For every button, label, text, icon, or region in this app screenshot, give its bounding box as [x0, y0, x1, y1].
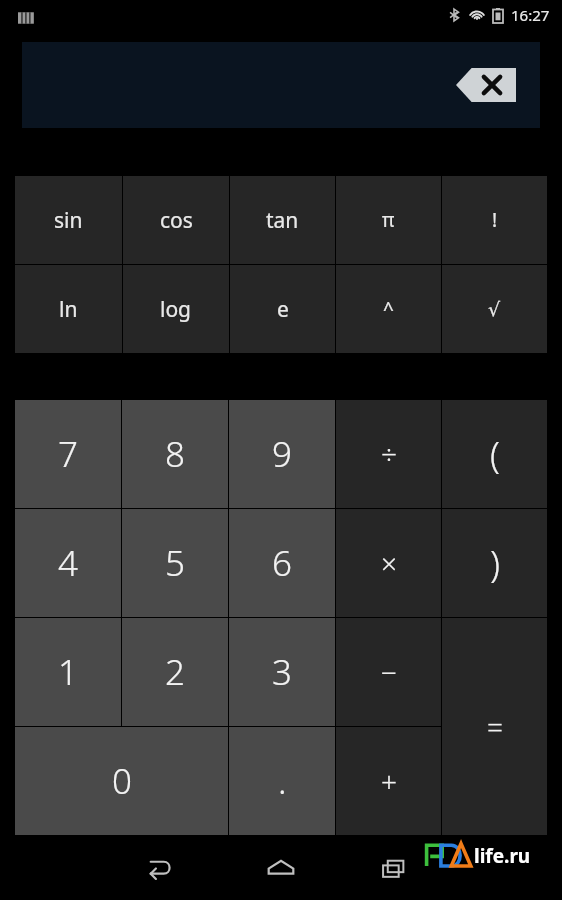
button[interactable]: ( [442, 400, 547, 508]
button[interactable]: π [336, 176, 441, 264]
button[interactable]: 8 [122, 400, 228, 508]
button[interactable]: Backspace [22, 42, 540, 128]
button[interactable]: = [442, 618, 547, 835]
button[interactable]: 9 [229, 400, 335, 508]
staticText: . [278, 757, 287, 805]
staticText: π [382, 207, 395, 233]
button[interactable]: 6 [229, 509, 335, 617]
button[interactable]: − [336, 618, 441, 726]
staticText: √ [488, 298, 501, 320]
button[interactable]: 5 [122, 509, 228, 617]
button[interactable]: ^ [336, 265, 441, 353]
staticText: 16:27 [511, 5, 550, 25]
staticText: + [381, 762, 397, 800]
staticText: 3 [272, 648, 292, 696]
staticText: cos [160, 206, 193, 235]
staticText: 0 [112, 757, 132, 805]
staticText: life.ru [474, 843, 531, 869]
button[interactable]: 2 [122, 618, 228, 726]
staticText: − [381, 653, 397, 691]
staticText: log [160, 295, 192, 324]
button[interactable]: . [229, 727, 335, 835]
staticText: sin [54, 206, 83, 235]
staticText: e [277, 295, 289, 324]
button[interactable]: e [230, 265, 335, 353]
staticText: 1 [58, 648, 78, 696]
button[interactable]: 4 [15, 509, 121, 617]
button[interactable]: sin [15, 176, 122, 264]
button[interactable]: tan [230, 176, 335, 264]
staticText: = [487, 708, 503, 746]
staticText: × [381, 544, 397, 582]
staticText: 9 [272, 430, 292, 478]
button[interactable]: 7 [15, 400, 121, 508]
button[interactable]: 1 [15, 618, 121, 726]
button[interactable]: Home [253, 840, 309, 896]
button[interactable]: Back [130, 840, 186, 896]
button[interactable]: Recent apps [366, 840, 422, 896]
staticText: ( [490, 430, 500, 479]
staticText: 7 [58, 430, 78, 478]
staticText: 6 [272, 539, 292, 587]
button[interactable]: + [336, 727, 441, 835]
staticText: 2 [165, 648, 185, 696]
staticText: ! [492, 207, 498, 233]
button[interactable]: 3 [229, 618, 335, 726]
staticText: 5 [165, 539, 185, 587]
button[interactable]: log [123, 265, 229, 353]
button[interactable]: cos [123, 176, 229, 264]
button[interactable]: ÷ [336, 400, 441, 508]
staticText: 4 [58, 539, 78, 587]
button[interactable]: ! [442, 176, 547, 264]
button[interactable]: ) [442, 509, 547, 617]
button[interactable]: ln [15, 265, 122, 353]
staticText: ln [59, 295, 78, 324]
button[interactable]: Backspace [456, 68, 516, 102]
button[interactable]: 0 [15, 727, 228, 835]
staticText: ^ [383, 296, 394, 322]
button[interactable]: × [336, 509, 441, 617]
button[interactable]: √ [442, 265, 547, 353]
staticText: 8 [165, 430, 185, 478]
staticText: ÷ [381, 435, 397, 473]
staticText: ) [490, 539, 500, 588]
staticText: tan [266, 206, 299, 235]
